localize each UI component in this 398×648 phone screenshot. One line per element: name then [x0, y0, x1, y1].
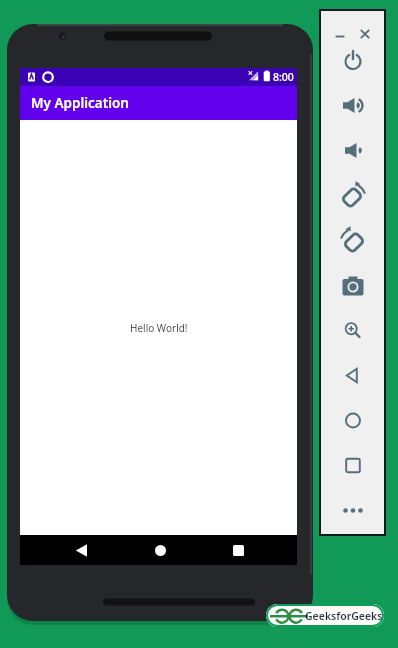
button[interactable]: [319, 173, 386, 218]
button[interactable]: [42, 535, 121, 565]
button[interactable]: [319, 398, 386, 443]
staticText: Hello World!: [130, 321, 188, 335]
button[interactable]: [319, 353, 386, 398]
button[interactable]: GeeksforGeeks: [266, 604, 384, 627]
button[interactable]: [319, 308, 386, 353]
button[interactable]: [319, 443, 386, 488]
button[interactable]: [352, 22, 378, 46]
button[interactable]: [199, 535, 277, 565]
button[interactable]: [319, 263, 386, 308]
button[interactable]: [319, 38, 386, 83]
button[interactable]: [319, 128, 386, 173]
staticText: My Application: [31, 94, 129, 112]
staticText: GeeksforGeeks: [305, 609, 383, 623]
button[interactable]: [319, 218, 386, 263]
button[interactable]: [319, 83, 386, 128]
button[interactable]: [121, 535, 199, 565]
button[interactable]: [319, 488, 386, 533]
button[interactable]: [327, 22, 352, 46]
staticText: 8:00: [273, 70, 294, 84]
